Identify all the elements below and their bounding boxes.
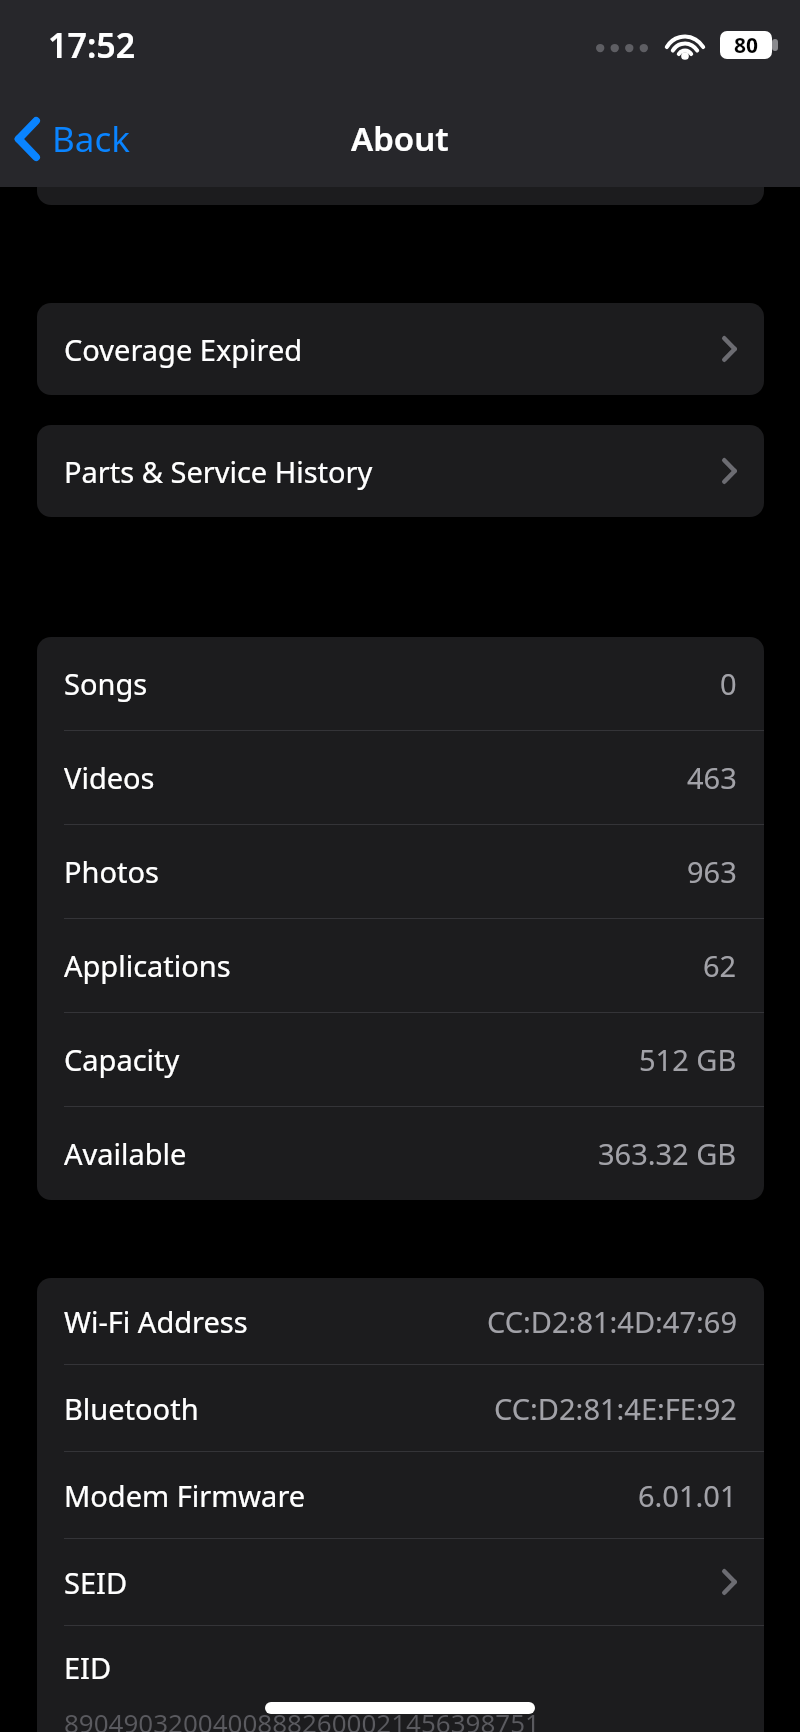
staticText: 0 <box>720 664 737 703</box>
staticText: Back <box>52 115 130 163</box>
staticText: 80 <box>734 31 759 59</box>
staticText: CC:D2:81:4E:FE:92 <box>494 1389 737 1428</box>
staticText: Coverage Expired <box>64 330 303 369</box>
staticText: Available <box>64 1134 187 1173</box>
button[interactable]: SEID <box>37 1539 764 1625</box>
staticText: EID <box>64 1648 112 1687</box>
button[interactable]: Applications <box>37 919 764 1012</box>
staticText: 6.01.01 <box>638 1476 737 1515</box>
button[interactable]: Songs <box>37 637 764 730</box>
staticText: 363.32 GB <box>598 1134 737 1173</box>
staticText: Songs <box>64 664 148 703</box>
staticText: Serial Number <box>64 139 261 178</box>
staticText: 512 GB <box>639 1040 737 1079</box>
staticText: Modem Firmware <box>64 1476 306 1515</box>
other: Open <box>722 336 737 362</box>
other: Open <box>722 1569 737 1595</box>
button[interactable]: Available <box>37 1107 764 1200</box>
button[interactable]: Parts & Service History <box>37 425 764 517</box>
button[interactable]: Videos <box>37 731 764 824</box>
staticText: Videos <box>64 758 155 797</box>
staticText: 62 <box>703 946 737 985</box>
staticText: Applications <box>64 946 231 985</box>
staticText: SEID <box>64 1563 128 1602</box>
button[interactable]: Capacity <box>37 1013 764 1106</box>
staticText: Photos <box>64 852 159 891</box>
button[interactable]: Bluetooth <box>37 1365 764 1451</box>
button[interactable]: Coverage Expired <box>37 303 764 395</box>
staticText: CC:D2:81:4D:47:69 <box>487 1302 737 1341</box>
staticText: About <box>351 116 449 161</box>
staticText: Wi-Fi Address <box>64 1302 248 1341</box>
other: Open <box>722 458 737 484</box>
button[interactable]: Photos <box>37 825 764 918</box>
staticText: Parts & Service History <box>64 452 373 491</box>
button[interactable]: Wi-Fi Address <box>37 1278 764 1364</box>
button[interactable]: Back <box>0 101 146 177</box>
staticText: 89049032004008882600021456398751 <box>64 1705 540 1732</box>
button[interactable]: EID <box>37 1626 764 1732</box>
staticText: 17:52 <box>48 22 136 68</box>
staticText: Capacity <box>64 1040 180 1079</box>
button[interactable]: Serial Number <box>37 112 764 205</box>
staticText: 463 <box>687 758 737 797</box>
staticText: 963 <box>687 852 737 891</box>
staticText: Bluetooth <box>64 1389 199 1428</box>
button[interactable]: Modem Firmware <box>37 1452 764 1538</box>
